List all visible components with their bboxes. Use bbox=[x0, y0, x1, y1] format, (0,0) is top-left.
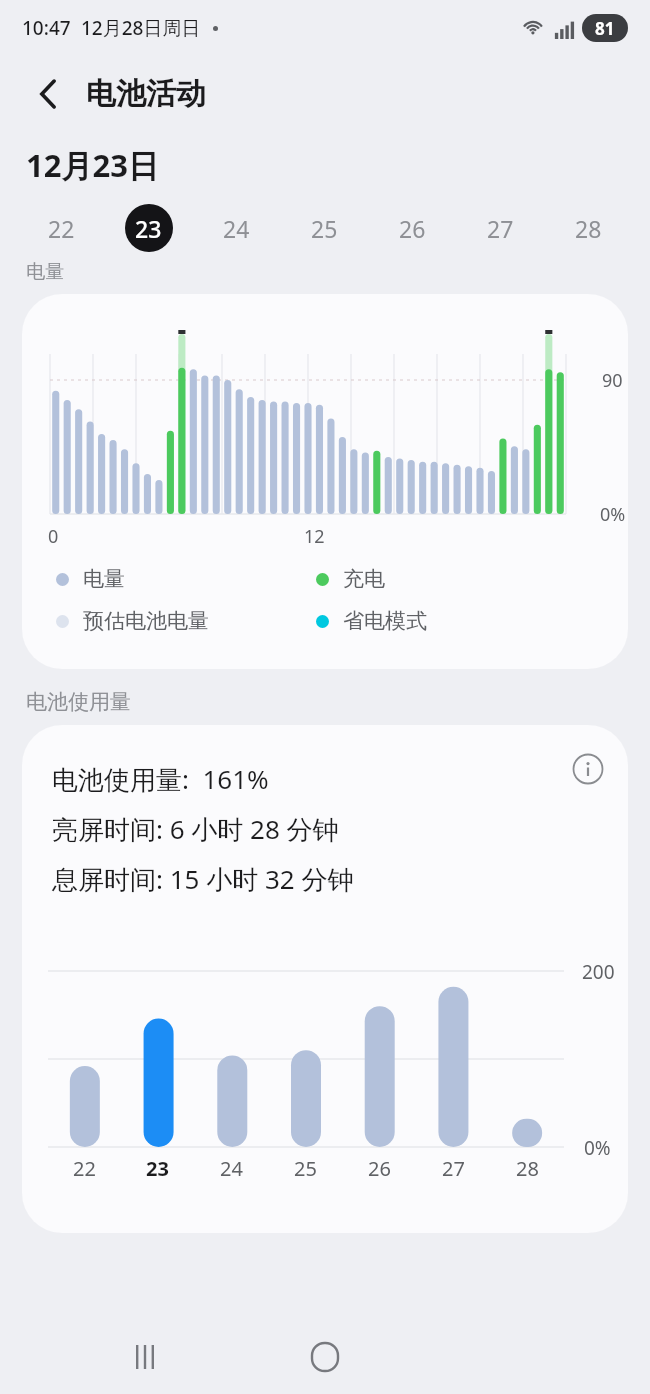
button[interactable]: 22 bbox=[18, 202, 105, 254]
staticText: 12月28日周日 bbox=[81, 15, 201, 41]
staticText: 充电 bbox=[343, 566, 385, 592]
button[interactable]: 返回 bbox=[22, 68, 74, 120]
button[interactable]: 26 bbox=[368, 202, 456, 254]
staticText: 电量 bbox=[26, 260, 64, 284]
staticText: 24 bbox=[223, 213, 250, 244]
button[interactable]: 24 bbox=[192, 202, 280, 254]
staticText: 27 bbox=[442, 1155, 465, 1182]
button[interactable]: 主屏幕 bbox=[289, 1321, 361, 1393]
staticText: 预估电池电量 bbox=[83, 608, 209, 634]
staticText: 81 bbox=[595, 17, 615, 40]
button[interactable]: 27 bbox=[456, 202, 544, 254]
staticText: 25 bbox=[294, 1155, 317, 1182]
staticText: 息屏时间: 15 小时 32 分钟 bbox=[52, 861, 354, 897]
button[interactable]: 28 bbox=[544, 202, 632, 254]
staticText: 0% bbox=[600, 502, 626, 527]
staticText: 24 bbox=[220, 1155, 243, 1182]
staticText: 电池活动 bbox=[86, 75, 206, 113]
staticText: 省电模式 bbox=[343, 608, 427, 634]
button[interactable]: 信息 bbox=[22, 725, 628, 1233]
staticText: 12 bbox=[304, 524, 325, 549]
staticText: 23 bbox=[135, 213, 162, 244]
staticText: 亮屏时间: 6 小时 28 分钟 bbox=[52, 811, 339, 847]
staticText: 0% bbox=[584, 1135, 611, 1161]
button[interactable]: 最近任务 bbox=[109, 1321, 181, 1393]
button[interactable]: 信息 bbox=[562, 743, 614, 795]
staticText: 26 bbox=[368, 1155, 391, 1182]
staticText: 电量 bbox=[83, 566, 125, 592]
staticText: 28 bbox=[575, 213, 602, 244]
staticText: 25 bbox=[311, 213, 338, 244]
staticText: 22 bbox=[48, 213, 75, 244]
staticText: 0 bbox=[48, 524, 59, 549]
staticText: 23 bbox=[146, 1155, 169, 1182]
staticText: 12月23日 bbox=[26, 144, 159, 186]
staticText: 22 bbox=[73, 1155, 96, 1182]
staticText: 26 bbox=[399, 213, 426, 244]
staticText: 电池使用量 bbox=[26, 689, 131, 715]
button[interactable]: 23 bbox=[105, 202, 192, 254]
staticText: 电池使用量: 161% bbox=[52, 761, 269, 797]
staticText: 90 bbox=[602, 368, 623, 393]
staticText: 200 bbox=[582, 959, 615, 985]
staticText: 10:47 bbox=[22, 15, 71, 41]
button[interactable]: 25 bbox=[280, 202, 368, 254]
staticText: 28 bbox=[516, 1155, 539, 1182]
staticText: 27 bbox=[487, 213, 514, 244]
button[interactable]: 90 bbox=[22, 294, 628, 669]
